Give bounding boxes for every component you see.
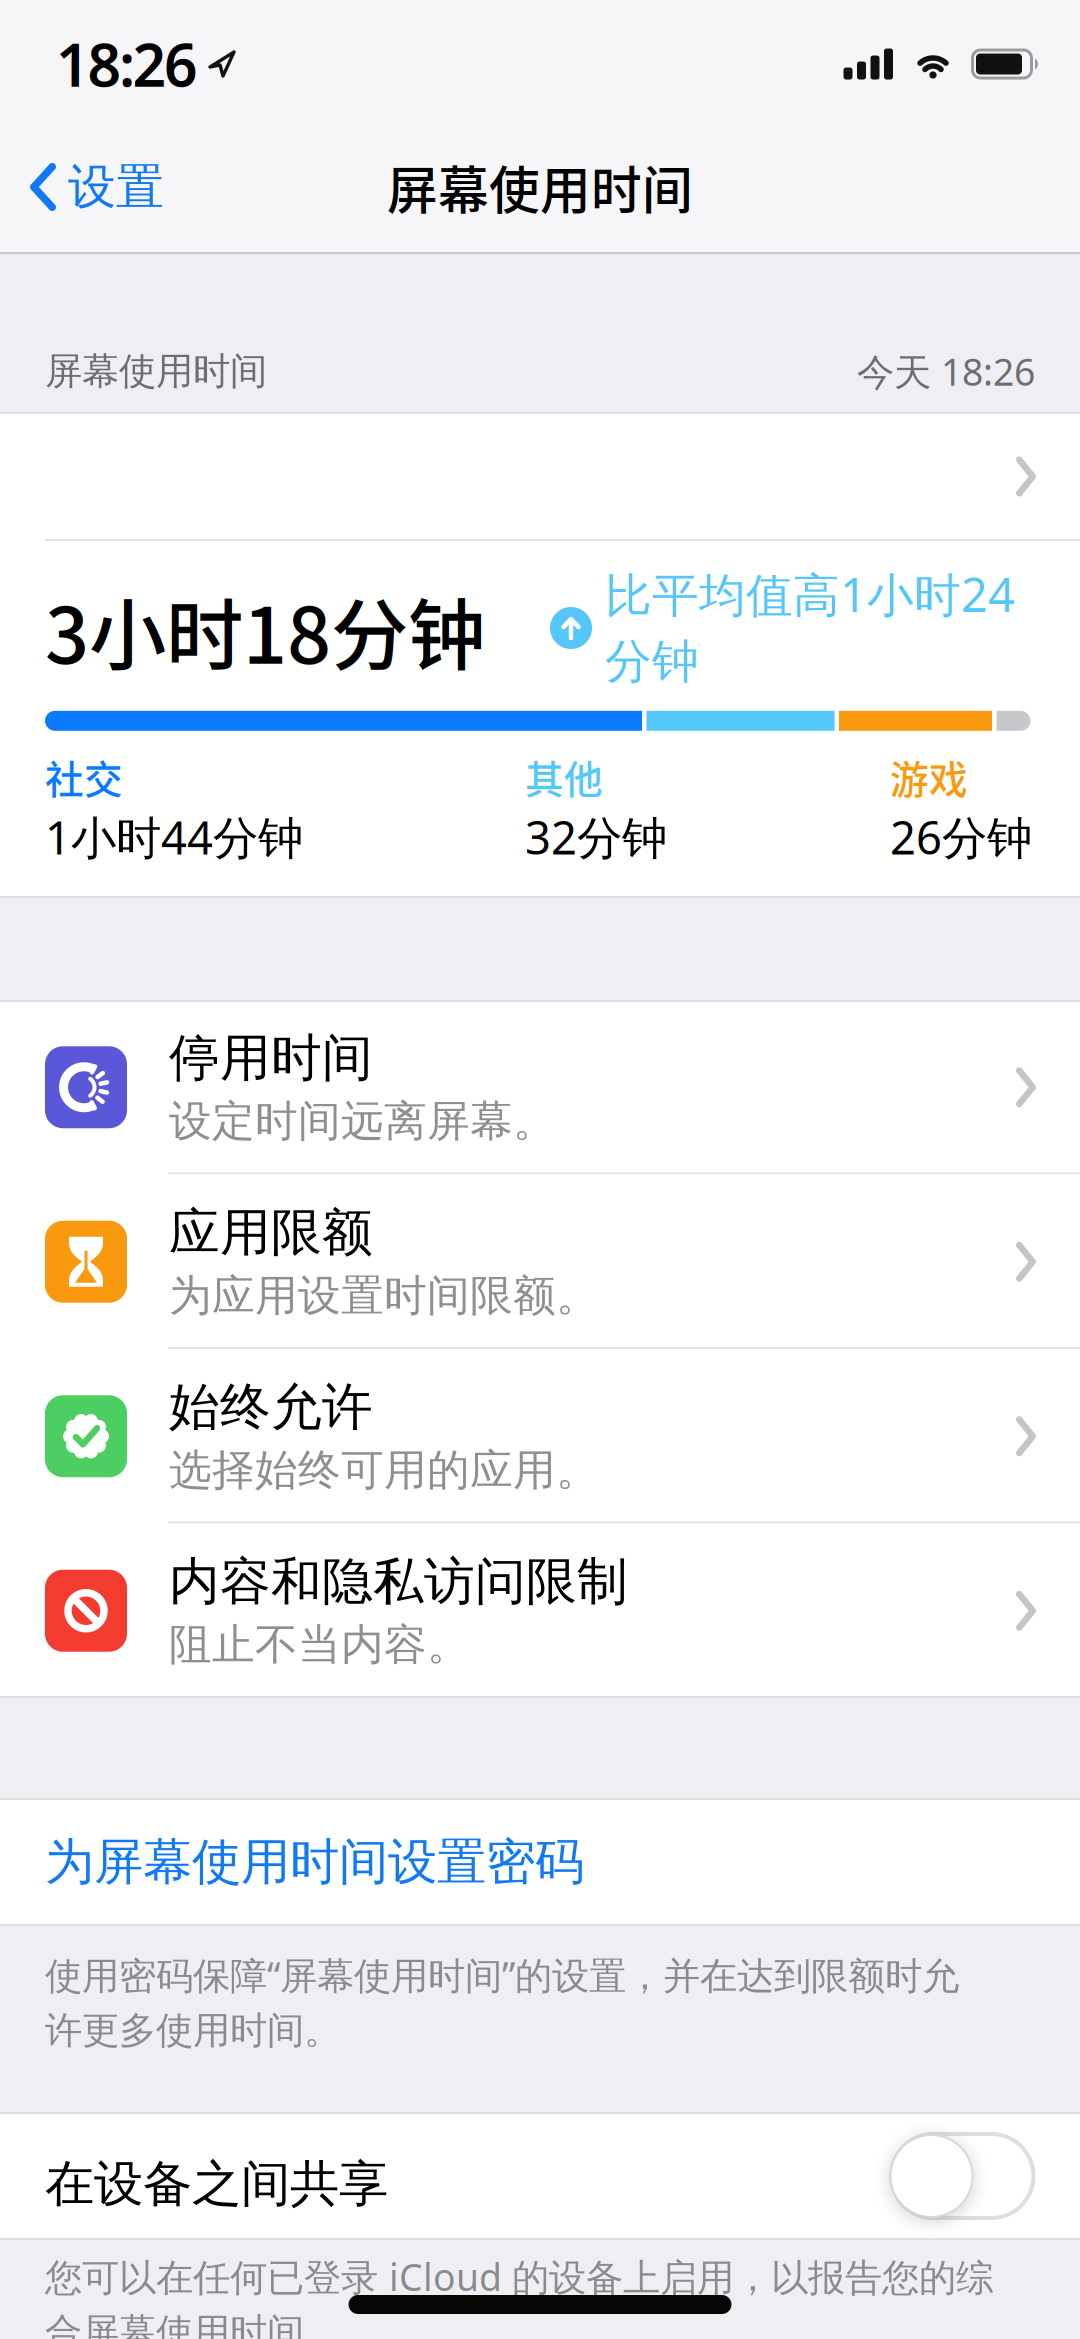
button[interactable]: 返回设置 — [0, 157, 164, 216]
button[interactable]: 停用时间 — [0, 1000, 1080, 1174]
staticText: 比平均值高1小时24 分钟 — [605, 563, 1015, 690]
staticText: 设定时间远离屏幕。 — [169, 1095, 556, 1148]
staticText: 今天 18:26 — [857, 346, 1035, 396]
button[interactable]: 设备 — [0, 412, 1080, 541]
staticText: 内容和隐私访问限制 — [169, 1550, 628, 1613]
staticText: 停用时间 — [169, 1027, 373, 1089]
button[interactable]: 为屏幕使用时间设置密码 — [0, 1798, 1080, 1926]
button[interactable]: 始终允许 — [0, 1349, 1080, 1523]
button[interactable]: 在设备之间共享 — [887, 2130, 1038, 2222]
staticText: 阻止不当内容。 — [169, 1619, 470, 1671]
staticText: 为应用设置时间限额。 — [169, 1270, 599, 1322]
staticText: 使用密码保障“屏幕使用时间”的设置，并在达到限额时允 许更多使用时间。 — [45, 1950, 959, 2053]
staticText: 设置 — [68, 157, 164, 216]
staticText: 应用限额 — [169, 1201, 373, 1264]
staticText: 为屏幕使用时间设置密码 — [45, 1832, 584, 1892]
staticText: 屏幕使用时间 — [45, 348, 267, 394]
staticText: 1小时44分钟 — [45, 807, 303, 867]
staticText: 其他 — [525, 749, 603, 805]
staticText: 您可以在任何已登录 iCloud 的设备上启用，以报告您的综 合屏幕使用时间 — [45, 2252, 993, 2339]
button[interactable]: 内容和隐私访问限制 — [0, 1523, 1080, 1698]
staticText: 屏幕使用时间 — [387, 150, 693, 224]
staticText: 在设备之间共享 — [45, 2154, 388, 2214]
staticText: 游戏 — [890, 749, 968, 805]
staticText: 始终允许 — [169, 1376, 373, 1438]
button[interactable]: 应用限额 — [0, 1174, 1080, 1349]
staticText: 选择始终可用的应用。 — [169, 1444, 599, 1497]
staticText: 32分钟 — [525, 807, 667, 867]
staticText: 3小时18分钟 — [45, 574, 485, 686]
staticText: 18:26 — [56, 25, 198, 103]
staticText: 26分钟 — [890, 807, 1032, 867]
staticText: 社交 — [45, 749, 123, 805]
